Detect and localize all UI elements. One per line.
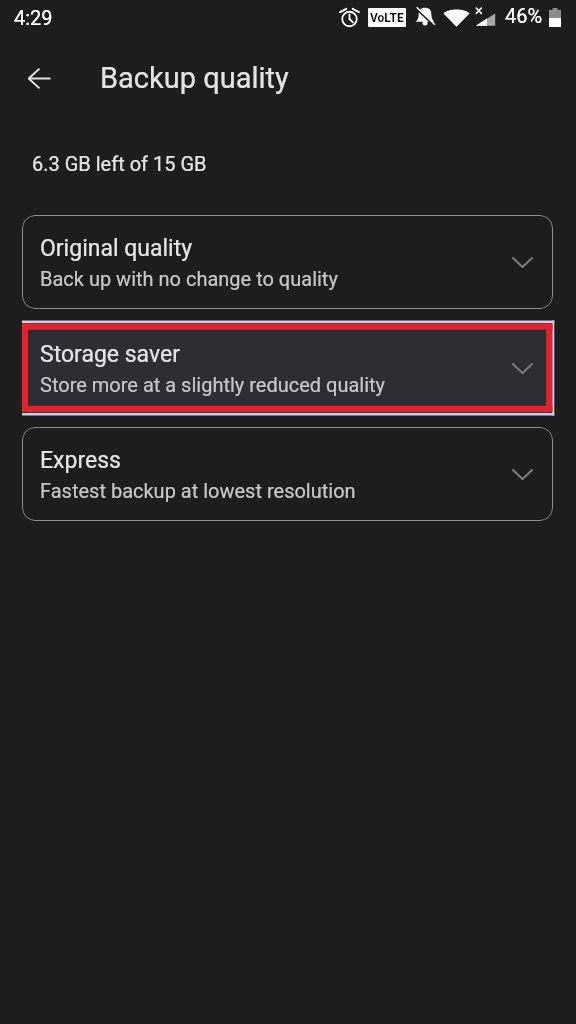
button[interactable]: Back: [14, 53, 64, 103]
button[interactable]: Storage saver: [22, 321, 553, 415]
staticText: Express: [40, 447, 121, 474]
staticText: VoLTE: [370, 11, 404, 25]
staticText: Storage saver: [40, 341, 180, 368]
staticText: Fastest backup at lowest resolution: [40, 479, 356, 502]
staticText: 46%: [505, 4, 543, 27]
staticText: 4:29: [14, 6, 53, 29]
staticText: Store more at a slightly reduced quality: [40, 373, 386, 396]
staticText: Original quality: [40, 235, 193, 262]
button[interactable]: Express: [22, 427, 553, 521]
staticText: 6.3 GB left of 15 GB: [32, 152, 207, 175]
staticText: Backup quality: [100, 61, 289, 95]
button[interactable]: Original quality: [22, 215, 553, 309]
staticText: Back up with no change to quality: [40, 267, 338, 290]
